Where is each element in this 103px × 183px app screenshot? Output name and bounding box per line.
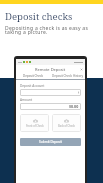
staticText: Remote Deposit [35, 67, 66, 72]
button[interactable]: Deposit Check [16, 73, 50, 79]
staticText: Deposit Check History [52, 74, 83, 78]
button[interactable]: Front of Check [20, 114, 49, 132]
staticText: Deposit Check [23, 74, 44, 78]
staticText: $0.00 [69, 104, 79, 109]
staticText: Deposit checks [5, 10, 73, 23]
button[interactable]: Submit Deposit [20, 138, 81, 146]
staticText: Depositing a check is as easy as [5, 25, 89, 32]
staticText: Back of Check [58, 124, 75, 128]
button[interactable]: Deposit Check History [50, 73, 85, 79]
staticText: Deposit Account [20, 84, 45, 88]
staticText: taking a picture. [5, 29, 48, 36]
button[interactable]: Amount [20, 103, 81, 110]
button[interactable]: Deposit account [20, 89, 81, 96]
staticText: Amount [20, 98, 33, 102]
staticText: Submit Deposit [39, 140, 62, 144]
button[interactable]: Back of Check [52, 114, 81, 132]
staticText: Front of Check [26, 124, 44, 128]
button[interactable]: Close [80, 68, 83, 71]
